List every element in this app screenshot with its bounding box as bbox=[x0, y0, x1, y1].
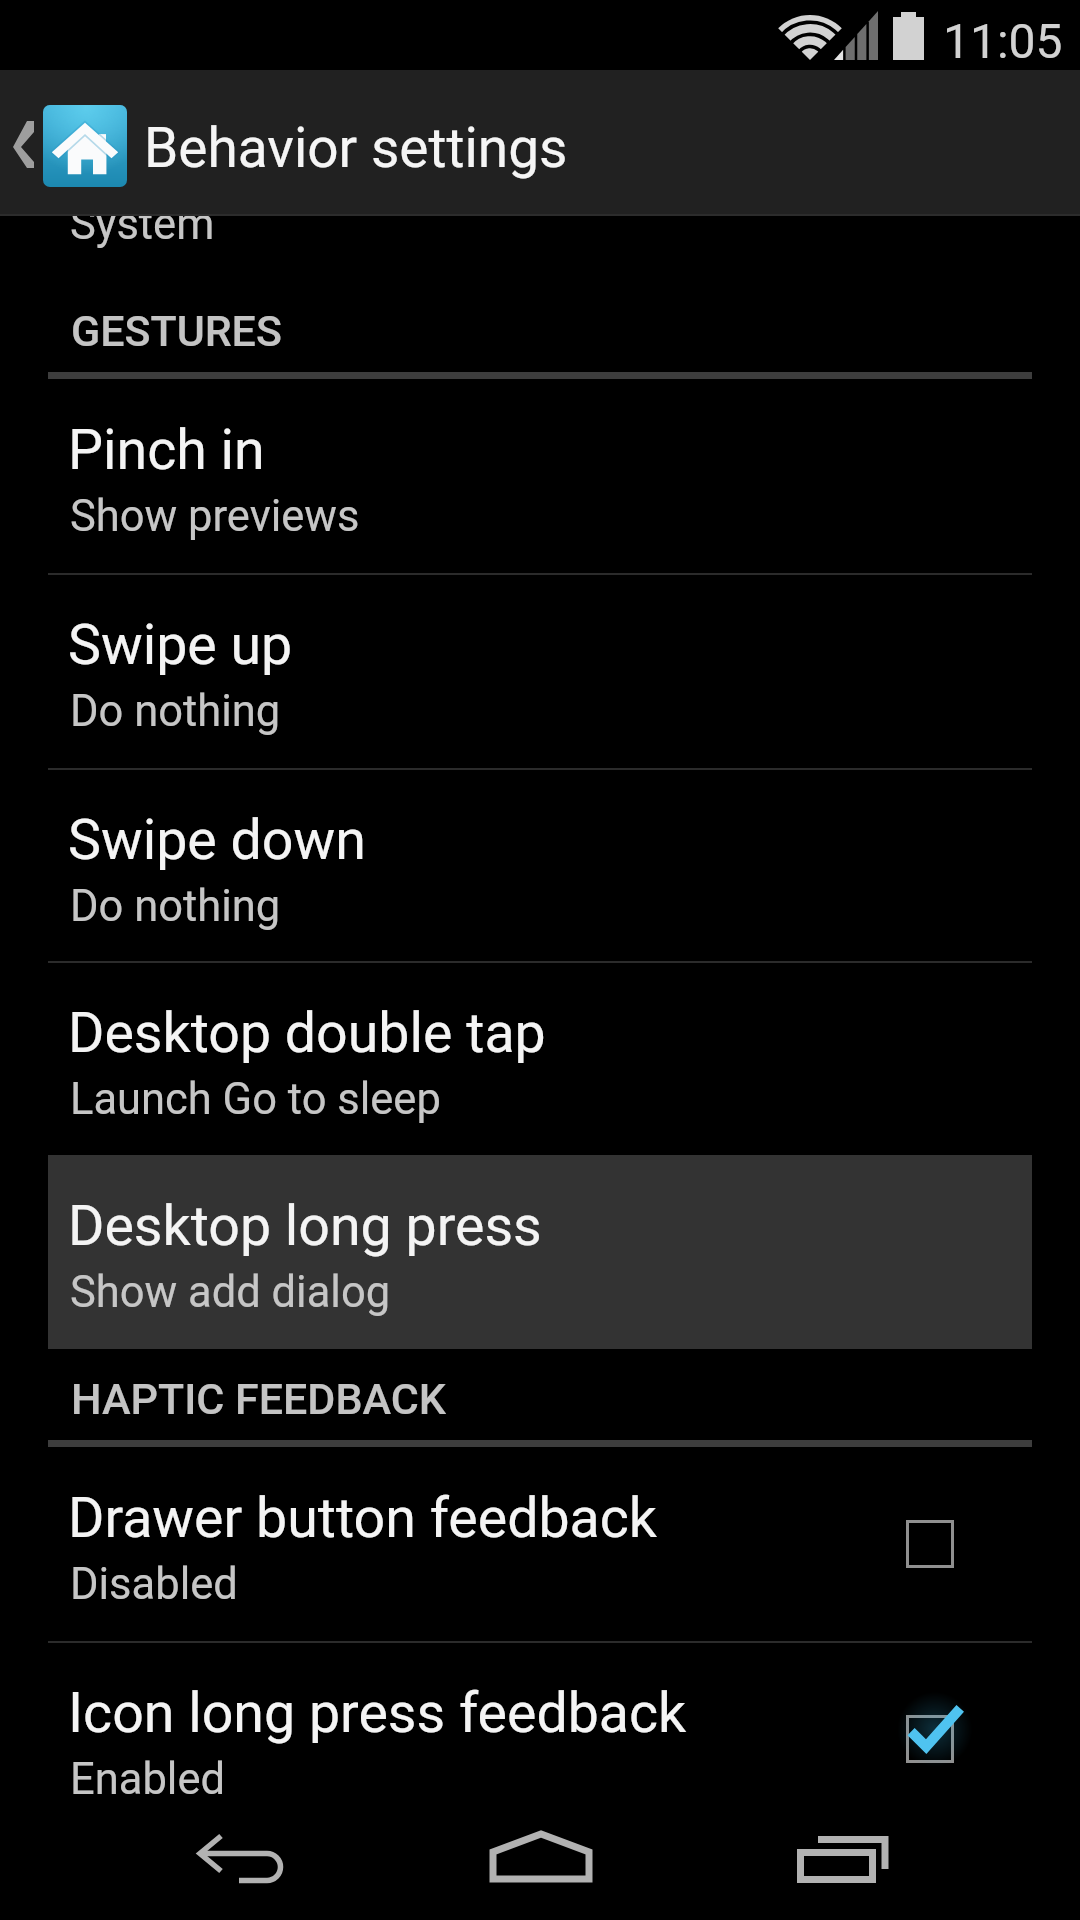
staticText: Behavior settings bbox=[144, 116, 568, 180]
button[interactable]: Disabled checkbox bbox=[906, 1520, 954, 1568]
staticText: 11:05 bbox=[943, 13, 1063, 69]
button[interactable]: Recent apps bbox=[771, 1799, 915, 1919]
staticText: System bbox=[70, 199, 215, 250]
staticText: Launch Go to sleep bbox=[70, 1074, 441, 1125]
staticText: Swipe up bbox=[68, 613, 293, 678]
staticText: Icon long press feedback bbox=[68, 1681, 687, 1746]
staticText: Desktop double tap bbox=[68, 1001, 546, 1066]
staticText: Swipe down bbox=[68, 808, 366, 873]
staticText: Enabled bbox=[70, 1754, 226, 1805]
staticText: Do nothing bbox=[70, 686, 281, 737]
button[interactable] bbox=[48, 1642, 1032, 1836]
button[interactable] bbox=[48, 1155, 1032, 1349]
button[interactable] bbox=[48, 379, 1032, 573]
staticText: Do nothing bbox=[70, 881, 281, 932]
staticText: Disabled bbox=[70, 1559, 238, 1610]
button[interactable]: Enabled checkbox bbox=[906, 1715, 954, 1763]
button[interactable]: Back bbox=[170, 1800, 314, 1920]
button[interactable] bbox=[48, 769, 1032, 963]
staticText: Desktop long press bbox=[68, 1194, 542, 1259]
button[interactable] bbox=[48, 1447, 1032, 1641]
staticText: Drawer button feedback bbox=[68, 1486, 657, 1551]
button[interactable]: Home bbox=[469, 1798, 613, 1918]
staticText: HAPTIC FEEDBACK bbox=[71, 1374, 446, 1424]
button[interactable] bbox=[48, 962, 1032, 1156]
button[interactable]: Navigate up bbox=[0, 70, 1080, 216]
staticText: GESTURES bbox=[71, 306, 282, 356]
staticText: Show previews bbox=[70, 491, 360, 542]
staticText: Show add dialog bbox=[70, 1267, 391, 1318]
staticText: Pinch in bbox=[68, 418, 265, 483]
button[interactable] bbox=[48, 574, 1032, 768]
